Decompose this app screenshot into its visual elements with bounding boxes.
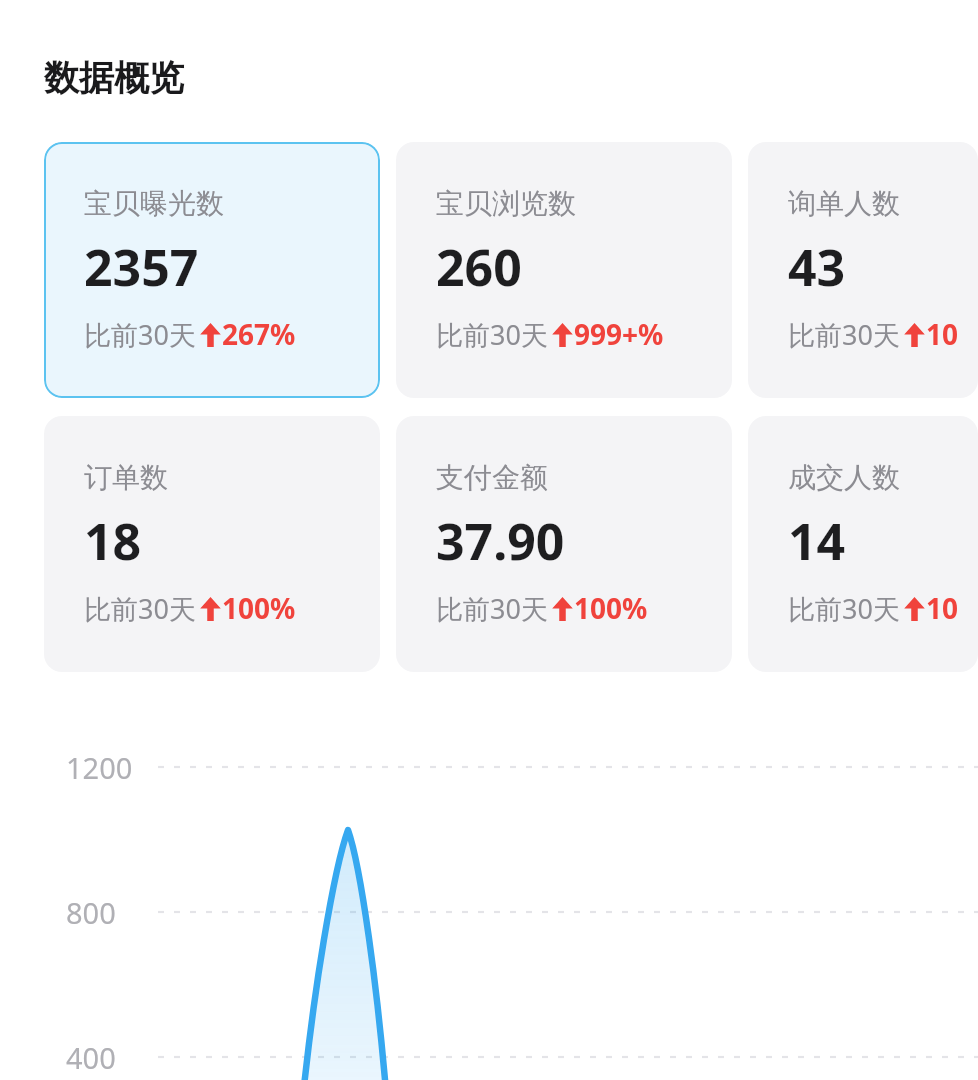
other: Increase <box>904 595 925 622</box>
staticText: 800 <box>66 893 116 932</box>
button[interactable]: 支付金额 <box>396 416 732 672</box>
staticText: 100% <box>222 589 296 627</box>
staticText: 2357 <box>84 233 199 301</box>
staticText: 比前30天 <box>788 590 900 627</box>
staticText: 比前30天 <box>84 316 196 353</box>
other: Increase <box>904 321 925 348</box>
staticText: 18 <box>84 507 142 575</box>
staticText: 比前30天 <box>436 590 548 627</box>
staticText: 宝贝曝光数 <box>84 186 224 221</box>
staticText: 37.90 <box>436 507 565 575</box>
staticText: 宝贝浏览数 <box>436 186 576 221</box>
staticText: 400 <box>66 1038 116 1077</box>
button[interactable]: 成交人数 <box>748 416 978 672</box>
staticText: 询单人数 <box>788 186 900 221</box>
staticText: 14 <box>788 507 846 575</box>
staticText: 267% <box>222 315 296 353</box>
staticText: 比前30天 <box>788 316 900 353</box>
staticText: 比前30天 <box>436 316 548 353</box>
button[interactable]: 询单人数 <box>748 142 978 398</box>
staticText: 260 <box>436 233 522 301</box>
other: Increase <box>552 321 573 348</box>
staticText: 100% <box>926 589 970 627</box>
staticText: 999+% <box>574 315 664 353</box>
staticText: 100% <box>926 315 970 353</box>
staticText: 43 <box>788 233 846 301</box>
staticText: 支付金额 <box>436 460 548 495</box>
button[interactable]: 订单数 <box>44 416 380 672</box>
other: Increase <box>552 595 573 622</box>
staticText: 成交人数 <box>788 460 900 495</box>
staticText: 100% <box>574 589 648 627</box>
other: Increase <box>200 595 221 622</box>
staticText: 数据概览 <box>44 56 184 100</box>
other: Increase <box>200 321 221 348</box>
button[interactable]: 宝贝浏览数 <box>396 142 732 398</box>
staticText: 订单数 <box>84 460 168 495</box>
staticText: 1200 <box>66 748 133 787</box>
button[interactable]: 宝贝曝光数 <box>44 142 380 398</box>
staticText: 比前30天 <box>84 590 196 627</box>
